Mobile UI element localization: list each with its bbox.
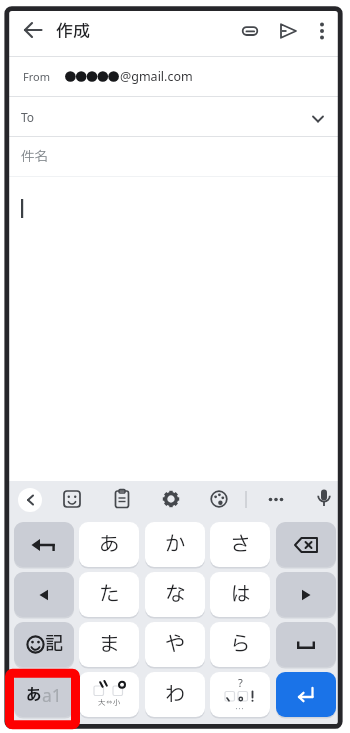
staticText: To: [21, 109, 35, 125]
button[interactable]: ?: [210, 672, 270, 717]
button[interactable]: さ: [210, 522, 270, 567]
button[interactable]: [276, 672, 336, 717]
button[interactable]: あ: [14, 672, 74, 717]
staticText: 作成: [56, 19, 90, 43]
staticText: @gmail.com: [120, 68, 193, 85]
button[interactable]: や: [145, 622, 205, 667]
staticText: ま: [99, 629, 120, 660]
button[interactable]: な: [145, 572, 205, 617]
button[interactable]: ま: [79, 622, 139, 667]
staticText: は: [230, 579, 251, 610]
button[interactable]: [207, 487, 231, 511]
staticText: ?: [238, 675, 243, 690]
button[interactable]: From: [9, 57, 340, 96]
button[interactable]: [276, 622, 336, 667]
button[interactable]: [312, 19, 332, 43]
button[interactable]: あ: [79, 522, 139, 567]
staticText: な: [165, 579, 186, 610]
button[interactable]: [238, 19, 262, 43]
button[interactable]: To: [9, 97, 340, 136]
staticText: …: [235, 702, 245, 715]
button[interactable]: [110, 487, 134, 511]
staticText: ら: [230, 629, 251, 660]
button[interactable]: [276, 572, 336, 617]
staticText: さ: [230, 529, 251, 560]
button[interactable]: [23, 20, 43, 40]
staticText: た: [99, 579, 120, 610]
staticText: あ: [99, 529, 120, 560]
button[interactable]: 件名: [9, 137, 340, 176]
button[interactable]: [312, 487, 336, 511]
staticText: 件名: [21, 147, 48, 167]
button[interactable]: [276, 522, 336, 567]
button[interactable]: ら: [210, 622, 270, 667]
button[interactable]: [14, 522, 74, 567]
button[interactable]: か: [145, 522, 205, 567]
button[interactable]: [18, 488, 42, 512]
staticText: か: [165, 529, 186, 560]
button[interactable]: 大⇔小: [79, 672, 139, 717]
staticText: From: [23, 69, 50, 84]
button[interactable]: [60, 487, 84, 511]
button[interactable]: [276, 19, 300, 43]
button[interactable]: は: [210, 572, 270, 617]
staticText: わ: [165, 679, 186, 710]
staticText: a1: [42, 683, 62, 707]
staticText: あ: [26, 684, 42, 707]
staticText: や: [165, 629, 186, 660]
staticText: 記: [45, 631, 63, 658]
button[interactable]: た: [79, 572, 139, 617]
button[interactable]: 記: [14, 622, 74, 667]
staticText: 大⇔小: [98, 697, 121, 708]
button[interactable]: [14, 572, 74, 617]
button[interactable]: わ: [145, 672, 205, 717]
button[interactable]: [159, 487, 183, 511]
